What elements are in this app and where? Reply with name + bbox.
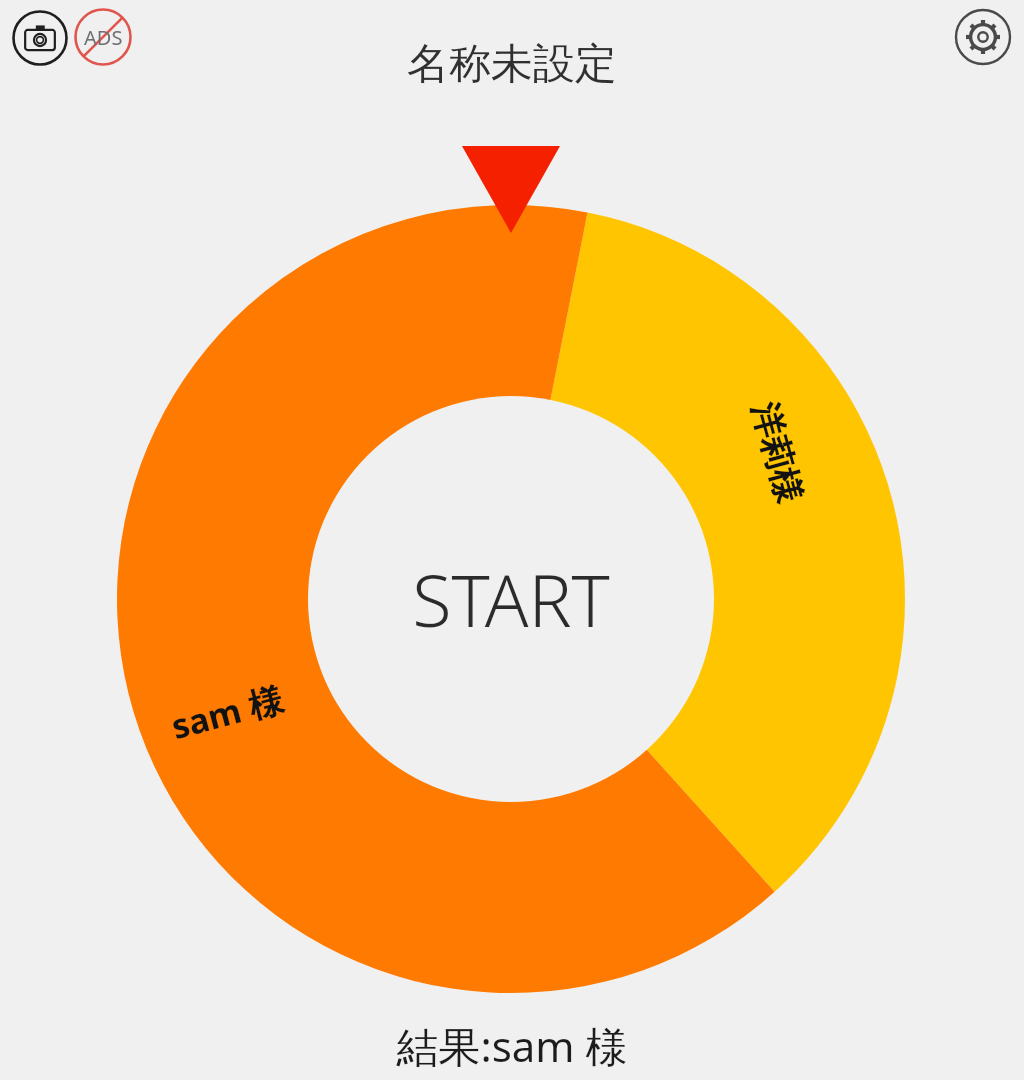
button[interactable]: START <box>308 396 714 802</box>
staticText: 名称未設定 <box>407 38 617 91</box>
button[interactable]: Remove ads <box>74 8 132 66</box>
button[interactable]: Screenshot <box>12 10 68 66</box>
button[interactable]: Settings <box>954 8 1012 66</box>
staticText: START <box>412 550 610 648</box>
staticText: ADS <box>84 24 123 51</box>
staticText: sam 様 <box>166 675 288 749</box>
staticText: 結果:sam 様 <box>396 1017 628 1074</box>
staticText: 洋莉様 <box>743 398 811 508</box>
